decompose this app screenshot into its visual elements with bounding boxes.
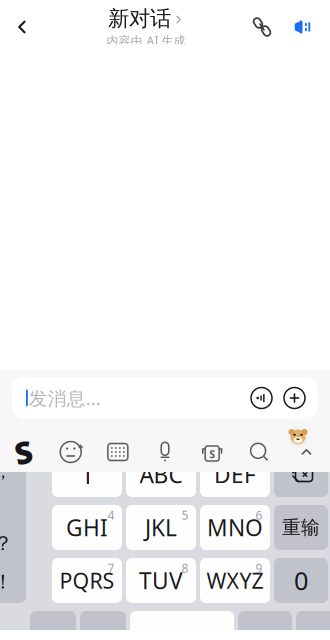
- button[interactable]: [296, 611, 330, 640]
- button[interactable]: ABC: [126, 452, 196, 497]
- staticText: MNO: [207, 512, 263, 542]
- staticText: 发消息...: [29, 386, 101, 410]
- button[interactable]: 0: [274, 558, 328, 603]
- staticText: 1: [80, 458, 94, 491]
- staticText: 内容由 AI 生成: [106, 33, 185, 48]
- button[interactable]: Emoji: [47, 437, 94, 467]
- staticText: ABC: [139, 459, 182, 489]
- staticText: S: [209, 447, 215, 461]
- staticText: 6: [255, 507, 262, 523]
- button[interactable]: TUV: [126, 558, 196, 603]
- staticText: GHI: [66, 512, 108, 542]
- button[interactable]: MNO: [200, 505, 270, 550]
- button[interactable]: 新对话: [106, 5, 185, 48]
- staticText: TUV: [139, 565, 183, 595]
- button[interactable]: ，: [0, 452, 26, 603]
- button[interactable]: [238, 611, 292, 640]
- button[interactable]: Keyboard layout: [94, 437, 141, 467]
- button[interactable]: Back: [0, 10, 44, 44]
- staticText: 新对话: [108, 5, 171, 32]
- staticText: 0: [294, 564, 308, 597]
- button[interactable]: More: [284, 387, 305, 408]
- staticText: 4: [107, 507, 114, 523]
- staticText: S: [15, 432, 33, 472]
- staticText: 9: [255, 560, 262, 576]
- staticText: ？: [0, 531, 13, 556]
- staticText: 8: [181, 560, 188, 576]
- staticText: DEF: [214, 459, 256, 489]
- button[interactable]: [30, 611, 76, 640]
- button[interactable]: WXYZ: [200, 558, 270, 603]
- button[interactable]: Call: [248, 12, 276, 42]
- button[interactable]: JKL: [126, 505, 196, 550]
- staticText: 7: [107, 560, 114, 576]
- staticText: ，: [0, 461, 11, 482]
- staticText: WXYZ: [206, 566, 263, 595]
- button[interactable]: Delete: [274, 452, 328, 497]
- staticText: ！: [0, 569, 13, 594]
- button[interactable]: Sogou input: [0, 437, 47, 467]
- button[interactable]: Voice input: [251, 387, 272, 408]
- staticText: 3: [255, 454, 262, 470]
- button[interactable]: PQRS: [52, 558, 122, 603]
- button[interactable]: 重输: [274, 505, 328, 550]
- button[interactable]: GHI: [52, 505, 122, 550]
- button[interactable]: [80, 611, 126, 640]
- staticText: JKL: [145, 512, 177, 542]
- button[interactable]: Search: [236, 437, 283, 467]
- button[interactable]: Speaker: [288, 12, 316, 42]
- button[interactable]: Themes: [189, 437, 236, 467]
- staticText: 重输: [282, 516, 320, 539]
- button[interactable]: DEF: [200, 452, 270, 497]
- button[interactable]: Voice: [141, 437, 188, 467]
- button[interactable]: 1: [52, 452, 122, 497]
- staticText: 5: [181, 507, 188, 523]
- staticText: PQRS: [59, 566, 114, 595]
- button[interactable]: Hide keyboard: [283, 437, 330, 467]
